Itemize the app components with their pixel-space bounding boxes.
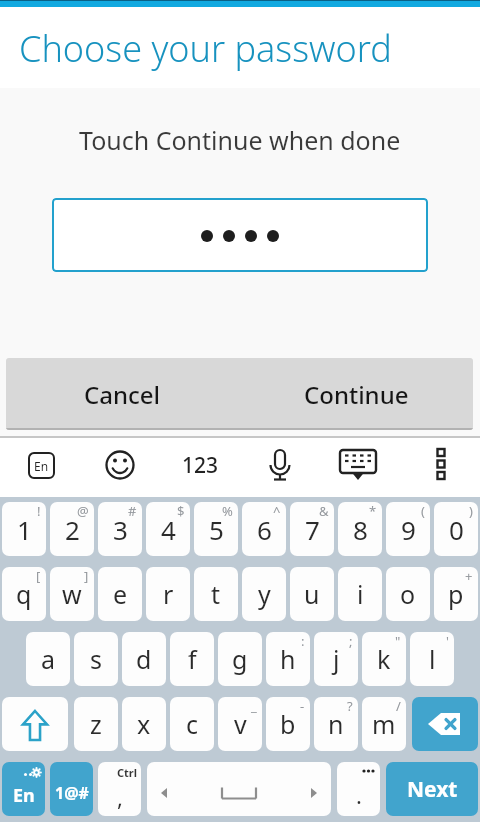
staticText: - bbox=[300, 697, 305, 715]
staticText: a bbox=[41, 642, 56, 676]
button[interactable]: z bbox=[74, 697, 118, 751]
button[interactable]: s bbox=[74, 632, 118, 686]
button[interactable]: v bbox=[218, 697, 262, 751]
staticText: ' bbox=[446, 632, 449, 650]
staticText: " bbox=[395, 632, 401, 650]
button[interactable]: d bbox=[122, 632, 166, 686]
button[interactable]: o bbox=[386, 567, 430, 621]
button[interactable]: . bbox=[337, 762, 380, 816]
staticText: m bbox=[372, 707, 396, 741]
staticText: 0 bbox=[449, 512, 464, 547]
button[interactable]: w bbox=[50, 567, 94, 621]
staticText: 7 bbox=[305, 512, 320, 547]
button[interactable]: En bbox=[2, 762, 45, 816]
button[interactable]: g bbox=[218, 632, 262, 686]
button[interactable]: u bbox=[290, 567, 334, 621]
button[interactable]: a bbox=[26, 632, 70, 686]
button[interactable]: t bbox=[194, 567, 238, 621]
staticText: e bbox=[113, 577, 128, 611]
button[interactable]: n bbox=[314, 697, 358, 751]
staticText: b bbox=[280, 707, 296, 741]
button[interactable] bbox=[412, 697, 478, 751]
staticText: % bbox=[222, 502, 233, 520]
button[interactable]: 123 bbox=[170, 436, 230, 494]
staticText: s bbox=[90, 642, 102, 676]
button[interactable]: q bbox=[2, 567, 46, 621]
staticText: 1@# bbox=[55, 782, 89, 804]
staticText: w bbox=[62, 577, 82, 611]
button[interactable]: m bbox=[362, 697, 406, 751]
staticText: * bbox=[369, 502, 377, 520]
staticText: d bbox=[136, 642, 152, 676]
button[interactable]: l bbox=[410, 632, 454, 686]
staticText: y bbox=[258, 577, 271, 611]
button[interactable] bbox=[250, 436, 310, 494]
button[interactable]: b bbox=[266, 697, 310, 751]
staticText: @ bbox=[77, 502, 89, 520]
staticText: z bbox=[90, 707, 102, 741]
staticText: 4 bbox=[161, 512, 176, 547]
button[interactable]: Continue bbox=[239, 358, 473, 430]
button[interactable] bbox=[147, 762, 331, 816]
staticText: En bbox=[13, 783, 35, 808]
button[interactable]: Next bbox=[386, 762, 478, 816]
staticText: o bbox=[400, 577, 416, 611]
staticText: : bbox=[301, 632, 305, 650]
staticText: r bbox=[163, 577, 174, 611]
button[interactable]: k bbox=[362, 632, 406, 686]
button[interactable]: 1 bbox=[2, 502, 46, 556]
button[interactable]: 0 bbox=[434, 502, 478, 556]
staticText: ) bbox=[469, 502, 473, 520]
staticText: ? bbox=[347, 697, 353, 715]
staticText: g bbox=[232, 642, 248, 676]
staticText: En bbox=[34, 458, 49, 474]
button[interactable]: 9 bbox=[386, 502, 430, 556]
staticText: p bbox=[448, 577, 464, 611]
button[interactable] bbox=[328, 436, 388, 494]
button[interactable] bbox=[90, 436, 150, 494]
staticText: Next bbox=[407, 775, 458, 804]
staticText: 5 bbox=[209, 512, 224, 547]
staticText: x bbox=[137, 707, 151, 741]
button[interactable]: i bbox=[338, 567, 382, 621]
staticText: + bbox=[465, 567, 473, 585]
button[interactable]: j bbox=[314, 632, 358, 686]
button[interactable] bbox=[2, 697, 68, 751]
button[interactable]: x bbox=[122, 697, 166, 751]
staticText: ^ bbox=[273, 502, 281, 520]
button[interactable]: En bbox=[11, 436, 71, 494]
staticText: 9 bbox=[401, 512, 416, 547]
staticText: ! bbox=[37, 502, 41, 520]
button[interactable]: c bbox=[170, 697, 214, 751]
button[interactable]: 2 bbox=[50, 502, 94, 556]
button[interactable]: y bbox=[242, 567, 286, 621]
staticText: v bbox=[234, 707, 247, 741]
button[interactable] bbox=[411, 436, 471, 494]
button[interactable]: Ctrl bbox=[98, 762, 141, 816]
button[interactable]: 7 bbox=[290, 502, 334, 556]
button[interactable]: 5 bbox=[194, 502, 238, 556]
button[interactable]: 1@# bbox=[50, 762, 93, 816]
button[interactable]: 4 bbox=[146, 502, 190, 556]
staticText: 3 bbox=[113, 512, 128, 547]
button[interactable]: p bbox=[434, 567, 478, 621]
staticText: [ bbox=[36, 567, 41, 585]
staticText: Continue bbox=[304, 378, 409, 411]
staticText: . bbox=[356, 780, 362, 810]
staticText: Cancel bbox=[84, 378, 161, 411]
button[interactable]: e bbox=[98, 567, 142, 621]
button[interactable]: 8 bbox=[338, 502, 382, 556]
staticText: h bbox=[280, 642, 296, 676]
button[interactable]: Cancel bbox=[6, 358, 239, 430]
button[interactable]: r bbox=[146, 567, 190, 621]
button[interactable]: 6 bbox=[242, 502, 286, 556]
staticText: c bbox=[186, 707, 199, 741]
button[interactable] bbox=[52, 198, 428, 272]
button[interactable]: f bbox=[170, 632, 214, 686]
staticText: _ bbox=[251, 697, 257, 715]
button[interactable]: 3 bbox=[98, 502, 142, 556]
staticText: i bbox=[357, 577, 364, 611]
staticText: Choose your password bbox=[19, 24, 392, 73]
button[interactable]: h bbox=[266, 632, 310, 686]
staticText: $ bbox=[177, 502, 185, 520]
